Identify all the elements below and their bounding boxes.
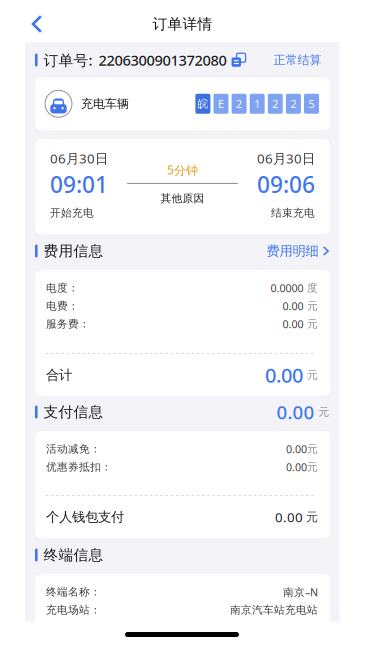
staticText: 结束充电 (271, 206, 315, 219)
staticText: 元 (307, 442, 318, 455)
staticText: 费用明细 (266, 243, 318, 259)
staticText: 元 (306, 510, 318, 524)
staticText: 个人钱包支付 (46, 509, 124, 525)
staticText: 充电场站： (46, 603, 101, 616)
staticText: 09:06 (257, 169, 315, 199)
staticText: 费用信息 (44, 242, 104, 260)
staticText: 5 (308, 97, 314, 111)
staticText: 充电车辆 (81, 96, 129, 111)
staticText: 2 (236, 97, 242, 111)
button[interactable]: 正常结算 (273, 53, 321, 67)
staticText: 2206300901372080 (99, 50, 227, 70)
staticText: 终端信息 (44, 546, 104, 564)
staticText: 元 (318, 405, 329, 418)
staticText: 电费： (46, 299, 79, 312)
staticText: 09:01 (50, 169, 108, 199)
staticText: 南京汽车站充电站 (230, 603, 318, 616)
button[interactable]: 返回 (20, 7, 54, 41)
staticText: 优惠券抵扣： (46, 460, 112, 473)
staticText: 元 (307, 299, 318, 312)
staticText: 活动减免： (46, 442, 101, 455)
staticText: 支付信息 (44, 403, 104, 421)
staticText: 正常结算 (273, 53, 321, 67)
staticText: 5分钟 (167, 162, 198, 178)
staticText: 合计 (46, 367, 72, 383)
staticText: 订单号: (44, 50, 93, 70)
staticText: E (218, 97, 224, 111)
staticText: 2 (290, 97, 296, 111)
staticText: 0.00 (275, 508, 303, 526)
staticText: 元 (307, 460, 318, 473)
staticText: 度 (307, 281, 318, 294)
button[interactable]: 费用明细 (266, 243, 329, 259)
staticText: 06月30日 (257, 149, 315, 167)
staticText: 终端名称： (46, 585, 101, 598)
staticText: 元 (307, 368, 318, 381)
staticText: 06月30日 (50, 149, 108, 167)
staticText: 其他原因 (160, 192, 204, 205)
staticText: 开始充电 (50, 206, 94, 219)
staticText: 元 (307, 317, 318, 330)
staticText: 订单详情 (152, 15, 212, 33)
staticText: 0.00 (286, 442, 307, 456)
staticText: 0.00 (282, 299, 303, 313)
staticText: 1 (254, 97, 260, 111)
button[interactable]: 复制订单号 (232, 53, 246, 67)
staticText: 0.00 (282, 317, 303, 331)
staticText: 0.00 (276, 400, 314, 424)
staticText: 0.0000 (270, 281, 303, 295)
staticText: 服务费： (46, 317, 90, 330)
staticText: 0.00 (265, 362, 303, 388)
staticText: 南京–N (283, 585, 318, 599)
staticText: 电度： (46, 281, 79, 294)
staticText: 皖 (197, 97, 208, 110)
staticText: 2 (272, 97, 278, 111)
staticText: 0.00 (286, 460, 307, 474)
